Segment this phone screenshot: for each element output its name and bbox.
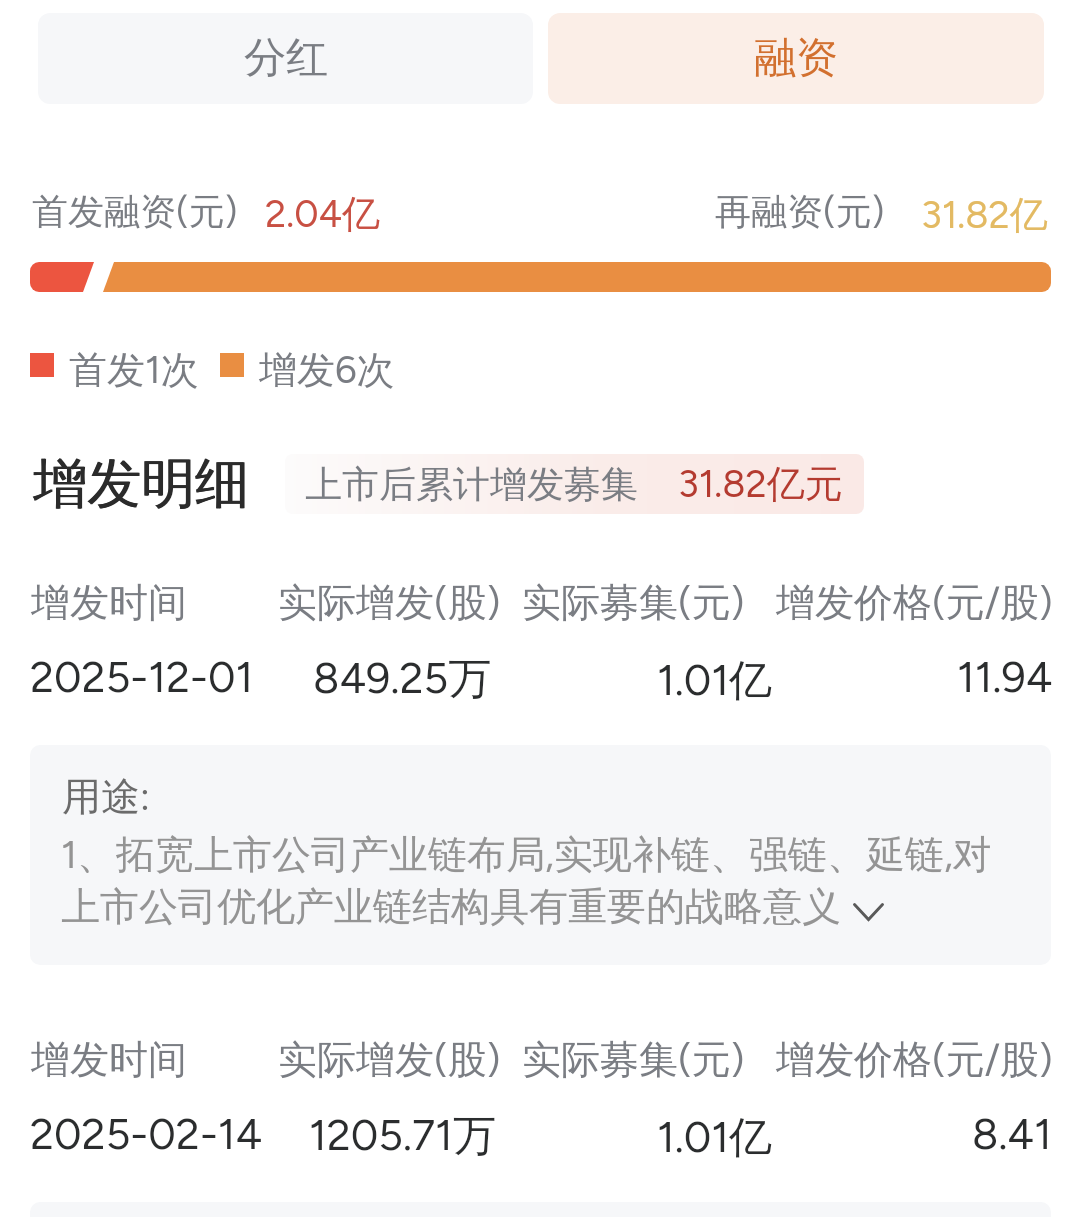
staticText: 增发价格(元/股) — [776, 578, 1053, 627]
staticText: 融资 — [754, 32, 838, 85]
staticText: 首发融资(元) — [32, 189, 238, 234]
staticText: 实际增发(股) — [278, 578, 501, 627]
staticText: 用途: — [62, 772, 150, 821]
staticText: 31.82亿 — [921, 191, 1048, 239]
staticText: 31.82亿元 — [678, 460, 843, 508]
staticText: 实际增发(股) — [278, 1035, 501, 1084]
button[interactable]: 融资 — [548, 13, 1044, 104]
staticText: 849.25万 — [313, 652, 492, 706]
staticText: 增发明细 — [34, 450, 250, 518]
staticText: 增发6次 — [259, 346, 395, 394]
staticText: 增发时间 — [31, 578, 187, 627]
button[interactable]: Expand use of proceeds — [30, 745, 1051, 965]
staticText: 再融资(元) — [715, 189, 885, 234]
staticText: 2025-12-01 — [30, 651, 254, 703]
staticText: 分红 — [244, 32, 328, 85]
staticText: 1.01亿 — [657, 654, 773, 708]
button[interactable]: 分红 — [38, 13, 533, 104]
staticText: 增发明细 — [33, 450, 249, 518]
staticText: 1205.71万 — [309, 1109, 496, 1163]
staticText: 增发价格(元/股) — [776, 1035, 1053, 1084]
staticText: 上市公司优化产业链结构具有重要的战略意义 — [61, 882, 841, 931]
button[interactable]: 上市后累计增发募集 — [285, 454, 864, 514]
button[interactable]: 增发时间 — [0, 570, 1080, 710]
staticText: 11.94 — [957, 651, 1053, 703]
staticText: 2025-02-14 — [30, 1108, 263, 1160]
staticText: 1.01亿 — [657, 1111, 773, 1165]
staticText: 增发明细 — [33, 450, 249, 518]
button[interactable]: 增发时间 — [0, 1027, 1080, 1167]
staticText: 2.04亿 — [265, 190, 381, 238]
staticText: 8.41 — [972, 1108, 1052, 1160]
staticText: 上市后累计增发募集 — [305, 461, 638, 508]
staticText: 实际募集(元) — [522, 578, 745, 627]
staticText: 1、拓宽上市公司产业链布局,实现补链、强链、延链,对 — [61, 830, 992, 879]
staticText: 首发1次 — [69, 346, 199, 394]
staticText: 实际募集(元) — [522, 1035, 745, 1084]
staticText: 增发时间 — [31, 1035, 187, 1084]
